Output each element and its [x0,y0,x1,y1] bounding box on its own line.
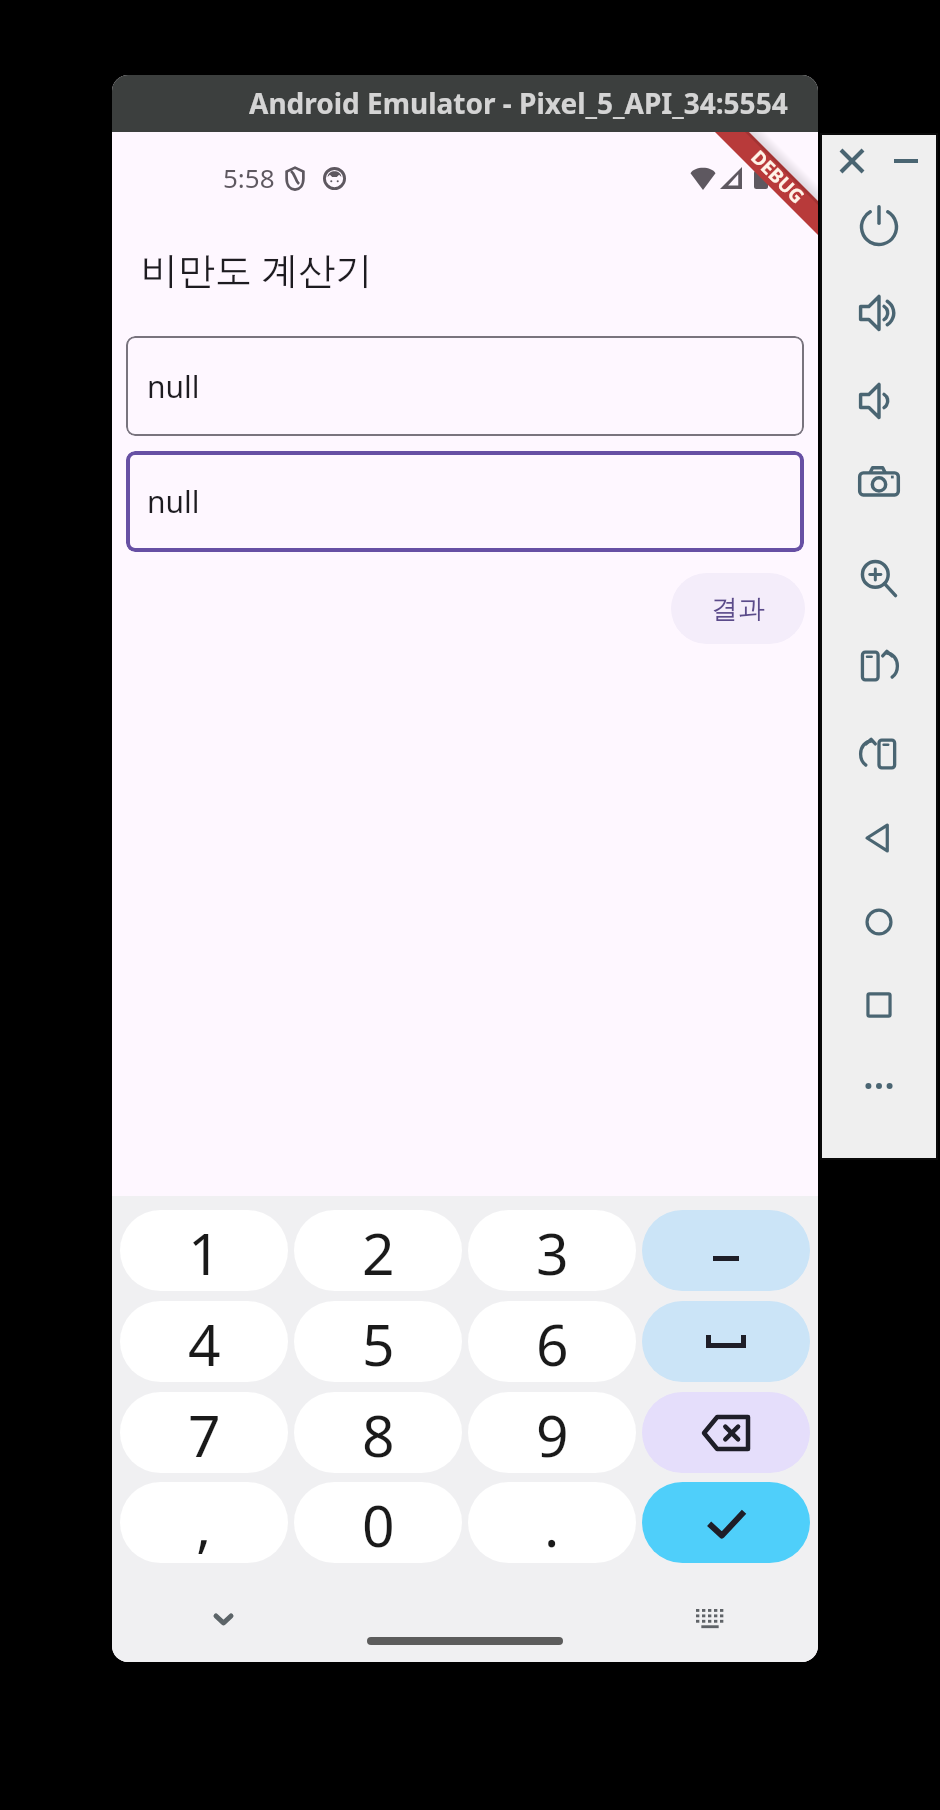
staticText: Android Emulator - Pixel_5_API_34:5554 [249,84,788,122]
staticText: 비만도 계산기 [141,243,373,294]
button[interactable]: Power [820,185,938,269]
staticText: . [544,1486,560,1563]
button[interactable]: null [126,336,804,436]
button[interactable]: Rotate left [820,712,938,796]
button[interactable]: 결과 [671,573,805,644]
button[interactable]: 8 [294,1392,462,1473]
button[interactable]: Minimize [880,137,932,185]
staticText: null [147,366,200,407]
button[interactable]: Back [820,796,938,880]
button[interactable]: null [126,451,804,552]
staticText: 7 [188,1396,221,1473]
button[interactable]: Switch keyboard [687,1595,735,1643]
button[interactable]: 5 [294,1301,462,1382]
button[interactable]: 0 [294,1482,462,1563]
button[interactable]: Screenshot [820,441,938,525]
staticText: 3 [536,1214,569,1291]
button[interactable]: Rotate right [820,624,938,708]
button[interactable]: . [468,1482,636,1563]
staticText: DEBUG [745,144,811,210]
staticText: 8 [362,1396,395,1473]
button[interactable]: Volume up [820,271,938,355]
button[interactable]: Minus [642,1210,810,1291]
staticText: 6 [536,1305,569,1382]
button[interactable]: Enter [642,1482,810,1563]
button[interactable]: Hide keyboard [199,1595,247,1643]
button[interactable]: Volume down [820,359,938,443]
staticText: 9 [536,1396,569,1473]
button[interactable]: 9 [468,1392,636,1473]
staticText: 5:58 [223,160,275,195]
staticText: null [147,481,200,522]
button[interactable]: 2 [294,1210,462,1291]
button[interactable]: Backspace [642,1392,810,1473]
button[interactable]: Space [642,1301,810,1382]
staticText: 2 [362,1214,395,1291]
button[interactable]: 6 [468,1301,636,1382]
staticText: 1 [188,1214,221,1291]
button[interactable]: Close [826,137,878,185]
button[interactable]: 1 [120,1210,288,1291]
staticText: 5 [362,1305,395,1382]
button[interactable]: 7 [120,1392,288,1473]
staticText: , [196,1486,212,1563]
button[interactable]: , [120,1482,288,1563]
staticText: 결과 [711,592,765,626]
staticText: 0 [362,1486,395,1563]
button[interactable]: Zoom [820,537,938,621]
staticText: 4 [188,1305,221,1382]
button[interactable]: 4 [120,1301,288,1382]
button[interactable]: Overview [820,963,938,1047]
button[interactable]: Home [820,880,938,964]
button[interactable]: More [820,1044,938,1128]
button[interactable]: 3 [468,1210,636,1291]
